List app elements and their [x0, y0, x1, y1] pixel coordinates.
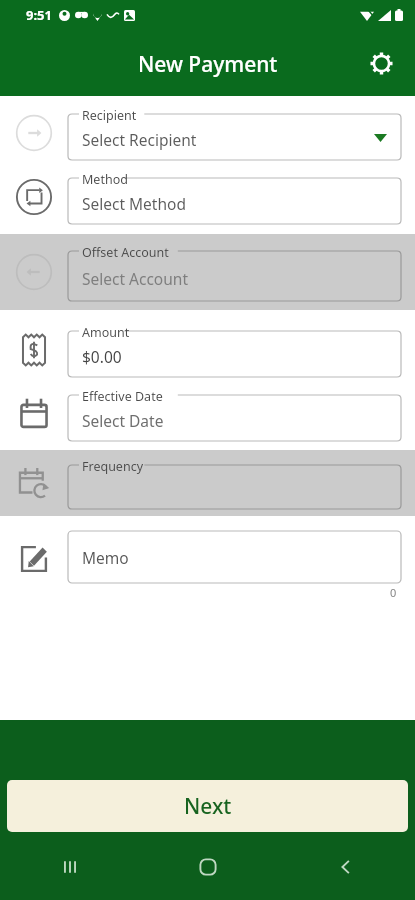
staticText: Select Account: [82, 268, 188, 289]
button[interactable]: Amount: [0, 323, 415, 377]
button[interactable]: Offset Account: [0, 243, 415, 301]
staticText: Amount: [82, 324, 130, 341]
staticText: Recipient: [82, 107, 137, 124]
staticText: Frequency: [82, 458, 144, 475]
button[interactable]: Recipient: [0, 106, 415, 160]
staticText: Select Date: [82, 410, 164, 431]
staticText: $0.00: [82, 346, 122, 367]
button[interactable]: Frequency: [0, 457, 415, 509]
button[interactable]: Method: [0, 170, 415, 224]
button[interactable]: Memo: [0, 531, 415, 600]
button[interactable]: Recents: [0, 833, 139, 900]
staticText: Next: [184, 792, 232, 821]
button[interactable]: Home: [139, 833, 277, 900]
staticText: Offset Account: [82, 244, 169, 261]
staticText: Method: [82, 171, 128, 188]
staticText: Select Method: [82, 193, 186, 214]
button[interactable]: Next: [7, 780, 408, 832]
button[interactable]: Back: [277, 833, 415, 900]
staticText: Select Recipient: [82, 129, 197, 150]
staticText: Effective Date: [82, 388, 163, 405]
staticText: 9:51: [26, 6, 52, 24]
button[interactable]: Settings: [361, 43, 401, 83]
staticText: 0: [390, 585, 397, 600]
staticText: Memo: [82, 547, 129, 568]
button[interactable]: Effective Date: [0, 387, 415, 441]
staticText: New Payment: [138, 50, 278, 79]
